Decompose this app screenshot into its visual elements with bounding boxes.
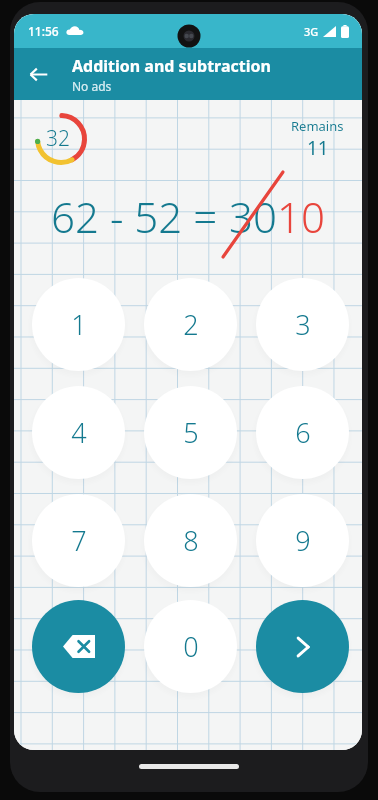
button[interactable]: 6 [256, 386, 349, 479]
staticText: 1 [71, 306, 87, 343]
staticText: Addition and subtraction [72, 55, 271, 77]
button[interactable]: 0 [144, 600, 237, 693]
button[interactable]: Next [256, 600, 349, 693]
staticText: 10 [277, 188, 325, 245]
button[interactable]: 9 [256, 494, 349, 587]
staticText: 5 [183, 414, 199, 451]
staticText: 7 [71, 522, 87, 559]
button[interactable]: 2 [144, 278, 237, 371]
staticText: 6 [295, 414, 311, 451]
staticText: 32 [46, 124, 70, 153]
staticText: 9 [295, 522, 311, 559]
staticText: 0 [183, 628, 199, 665]
button[interactable]: 5 [144, 386, 237, 479]
staticText: 3G [304, 24, 319, 39]
staticText: No ads [72, 78, 112, 94]
button[interactable]: 8 [144, 494, 237, 587]
button[interactable]: Back [14, 50, 62, 98]
staticText: 2 [183, 306, 199, 343]
staticText: 11:56 [28, 23, 59, 39]
staticText: 11 [307, 135, 329, 161]
button[interactable]: 1 [32, 278, 125, 371]
staticText: 4 [71, 414, 87, 451]
staticText: 8 [183, 522, 199, 559]
button[interactable]: 7 [32, 494, 125, 587]
button[interactable]: 3 [256, 278, 349, 371]
button[interactable]: 4 [32, 386, 125, 479]
staticText: 62 - 52 = [51, 188, 229, 245]
button[interactable]: Backspace [32, 600, 125, 693]
staticText: 30 [229, 188, 277, 245]
staticText: Remains [291, 117, 344, 135]
staticText: 3 [295, 306, 311, 343]
